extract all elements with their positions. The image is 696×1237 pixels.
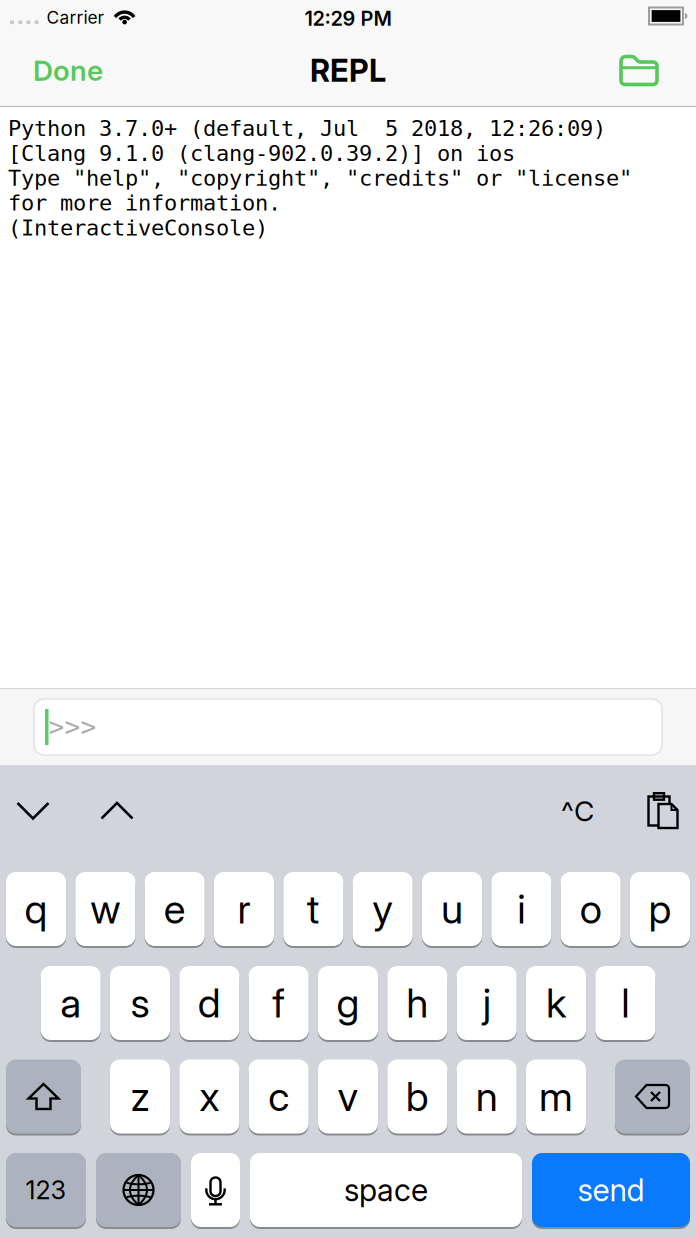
button[interactable]: f	[249, 966, 309, 1040]
button[interactable]: b	[387, 1059, 447, 1133]
button[interactable]: t	[283, 872, 343, 946]
button[interactable]: r	[214, 872, 274, 946]
staticText: ^C	[561, 794, 594, 828]
button[interactable]: space	[250, 1153, 522, 1227]
button[interactable]: o	[561, 872, 621, 946]
staticText: Done	[33, 54, 103, 87]
button[interactable]: c	[249, 1059, 309, 1133]
staticText: o	[580, 885, 602, 933]
staticText: t	[307, 885, 320, 933]
button[interactable]: j	[457, 966, 517, 1040]
staticText: r	[237, 885, 250, 933]
button[interactable]: u	[422, 872, 482, 946]
staticText: >>>	[48, 712, 96, 742]
staticText: b	[406, 1072, 429, 1121]
button[interactable]: s	[110, 966, 170, 1040]
button[interactable]: send	[532, 1153, 690, 1227]
staticText: 12:29 PM	[304, 6, 391, 31]
button[interactable]: Dictate	[191, 1153, 240, 1227]
button[interactable]: m	[526, 1059, 586, 1133]
button[interactable]: n	[457, 1059, 517, 1133]
staticText: f	[272, 979, 285, 1027]
button[interactable]: d	[179, 966, 239, 1040]
staticText: i	[517, 885, 525, 933]
button[interactable]: x	[179, 1059, 239, 1133]
staticText: Carrier	[47, 7, 105, 28]
staticText: 123	[25, 1175, 66, 1205]
staticText: g	[336, 979, 359, 1027]
staticText: Python 3.7.0+ (default, Jul 5 2018, 12:2…	[8, 116, 632, 240]
staticText: q	[24, 885, 47, 933]
staticText: v	[337, 1072, 358, 1121]
button[interactable]: Interrupt	[561, 794, 594, 828]
button[interactable]: k	[526, 966, 586, 1040]
staticText: y	[372, 885, 393, 933]
button[interactable]: Open file browser	[619, 54, 659, 86]
staticText: m	[539, 1072, 573, 1121]
staticText: REPL	[310, 52, 386, 89]
staticText: p	[648, 885, 671, 933]
button[interactable]: z	[110, 1059, 170, 1133]
button[interactable]: History up	[92, 801, 142, 820]
staticText: space	[344, 1171, 428, 1208]
staticText: send	[577, 1171, 644, 1208]
staticText: c	[268, 1072, 289, 1121]
button[interactable]: Hide keyboard	[8, 801, 58, 820]
button[interactable]: w	[75, 872, 135, 946]
staticText: u	[441, 885, 463, 933]
staticText: w	[90, 885, 120, 933]
button[interactable]: i	[491, 872, 551, 946]
button[interactable]: g	[318, 966, 378, 1040]
staticText: s	[130, 979, 149, 1027]
button[interactable]: Numbers	[6, 1153, 86, 1227]
staticText: e	[164, 885, 186, 933]
button[interactable]: Next keyboard	[96, 1153, 181, 1227]
button[interactable]: v	[318, 1059, 378, 1133]
button[interactable]: Paste	[647, 792, 679, 830]
button[interactable]: Shift	[6, 1059, 81, 1133]
staticText: d	[198, 979, 221, 1027]
staticText: z	[130, 1072, 149, 1121]
button[interactable]: h	[387, 966, 447, 1040]
button[interactable]: p	[630, 872, 690, 946]
staticText: a	[60, 979, 81, 1027]
staticText: h	[406, 979, 428, 1027]
button[interactable]: y	[353, 872, 413, 946]
button[interactable]: a	[41, 966, 101, 1040]
staticText: k	[546, 979, 566, 1027]
button[interactable]: q	[6, 872, 66, 946]
button[interactable]: l	[595, 966, 655, 1040]
staticText: x	[199, 1072, 219, 1121]
button[interactable]: Done	[33, 54, 103, 87]
staticText: l	[621, 979, 629, 1027]
staticText: n	[476, 1072, 498, 1121]
staticText: j	[483, 979, 491, 1027]
button[interactable]: Delete	[615, 1059, 690, 1133]
button[interactable]: e	[145, 872, 205, 946]
